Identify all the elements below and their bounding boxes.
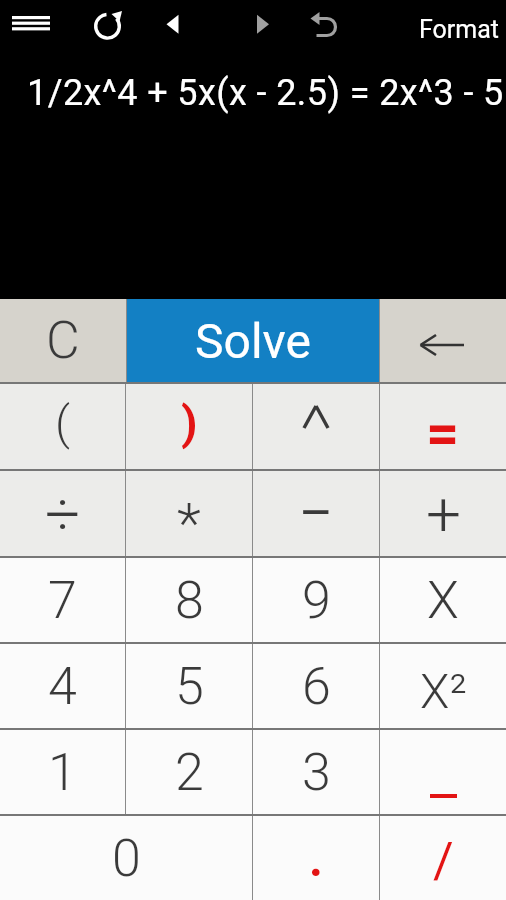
button[interactable]: 8: [126, 558, 252, 642]
staticText: 5: [175, 656, 204, 717]
button[interactable]: C: [0, 299, 126, 382]
button[interactable]: 2: [126, 730, 252, 814]
staticText: 6: [302, 656, 331, 717]
staticText: /: [433, 832, 454, 891]
button[interactable]: 3: [253, 730, 379, 814]
button[interactable]: Format: [419, 15, 499, 44]
button[interactable]: (: [0, 384, 125, 469]
button[interactable]: X²: [380, 644, 506, 728]
button[interactable]: +: [380, 471, 506, 556]
staticText: 7: [48, 570, 77, 631]
staticText: 9: [302, 570, 331, 631]
staticText: 0: [112, 828, 141, 889]
button[interactable]: 4: [0, 644, 125, 728]
button[interactable]: *: [126, 471, 252, 556]
staticText: Solve: [195, 313, 311, 369]
button[interactable]: .: [253, 816, 379, 900]
button[interactable]: =: [380, 384, 506, 469]
button[interactable]: ): [126, 384, 252, 469]
button[interactable]: /: [380, 816, 506, 900]
staticText: 2: [175, 742, 204, 803]
button[interactable]: 5: [126, 644, 252, 728]
button[interactable]: 9: [253, 558, 379, 642]
button[interactable]: ÷: [0, 471, 125, 556]
staticText: 1: [48, 742, 77, 803]
staticText: X: [427, 570, 459, 631]
staticText: 4: [48, 656, 77, 717]
staticText: 8: [175, 570, 204, 631]
staticText: 3: [302, 742, 331, 803]
staticText: +: [426, 477, 461, 550]
staticText: *: [177, 491, 201, 557]
button[interactable]: –: [253, 471, 379, 556]
button[interactable]: X: [380, 558, 506, 642]
button[interactable]: 1: [0, 730, 125, 814]
button[interactable]: 7: [0, 558, 125, 642]
staticText: 1/2x^4 + 5x(x - 2.5) = 2x^3 - 5: [27, 72, 504, 114]
button[interactable]: 6: [253, 644, 379, 728]
button[interactable]: Solve: [127, 299, 379, 382]
staticText: ): [181, 395, 198, 450]
staticText: =: [426, 399, 460, 467]
staticText: (: [55, 395, 71, 450]
staticText: C: [46, 310, 80, 371]
button[interactable]: 0: [0, 816, 252, 900]
button[interactable]: [380, 730, 506, 814]
button[interactable]: [253, 384, 379, 469]
staticText: .: [309, 831, 323, 887]
staticText: X²: [420, 663, 467, 719]
staticText: ÷: [45, 477, 81, 550]
staticText: –: [299, 483, 334, 544]
button[interactable]: [380, 299, 506, 382]
